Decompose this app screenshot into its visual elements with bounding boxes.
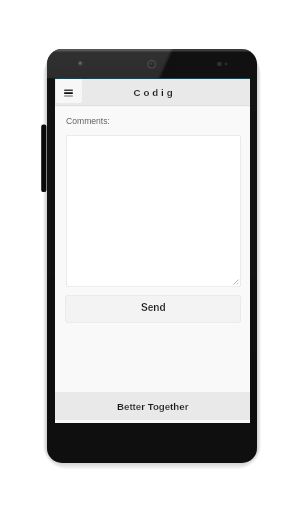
staticText: Send bbox=[141, 302, 166, 313]
button[interactable]: Send bbox=[65, 295, 241, 323]
button[interactable] bbox=[66, 135, 241, 287]
button[interactable]: Open navigation menu bbox=[56, 79, 82, 103]
staticText: Better Together bbox=[117, 401, 189, 412]
staticText: Comments: bbox=[66, 116, 110, 126]
staticText: Codig bbox=[57, 87, 252, 98]
button[interactable]: Better Together bbox=[55, 392, 250, 420]
